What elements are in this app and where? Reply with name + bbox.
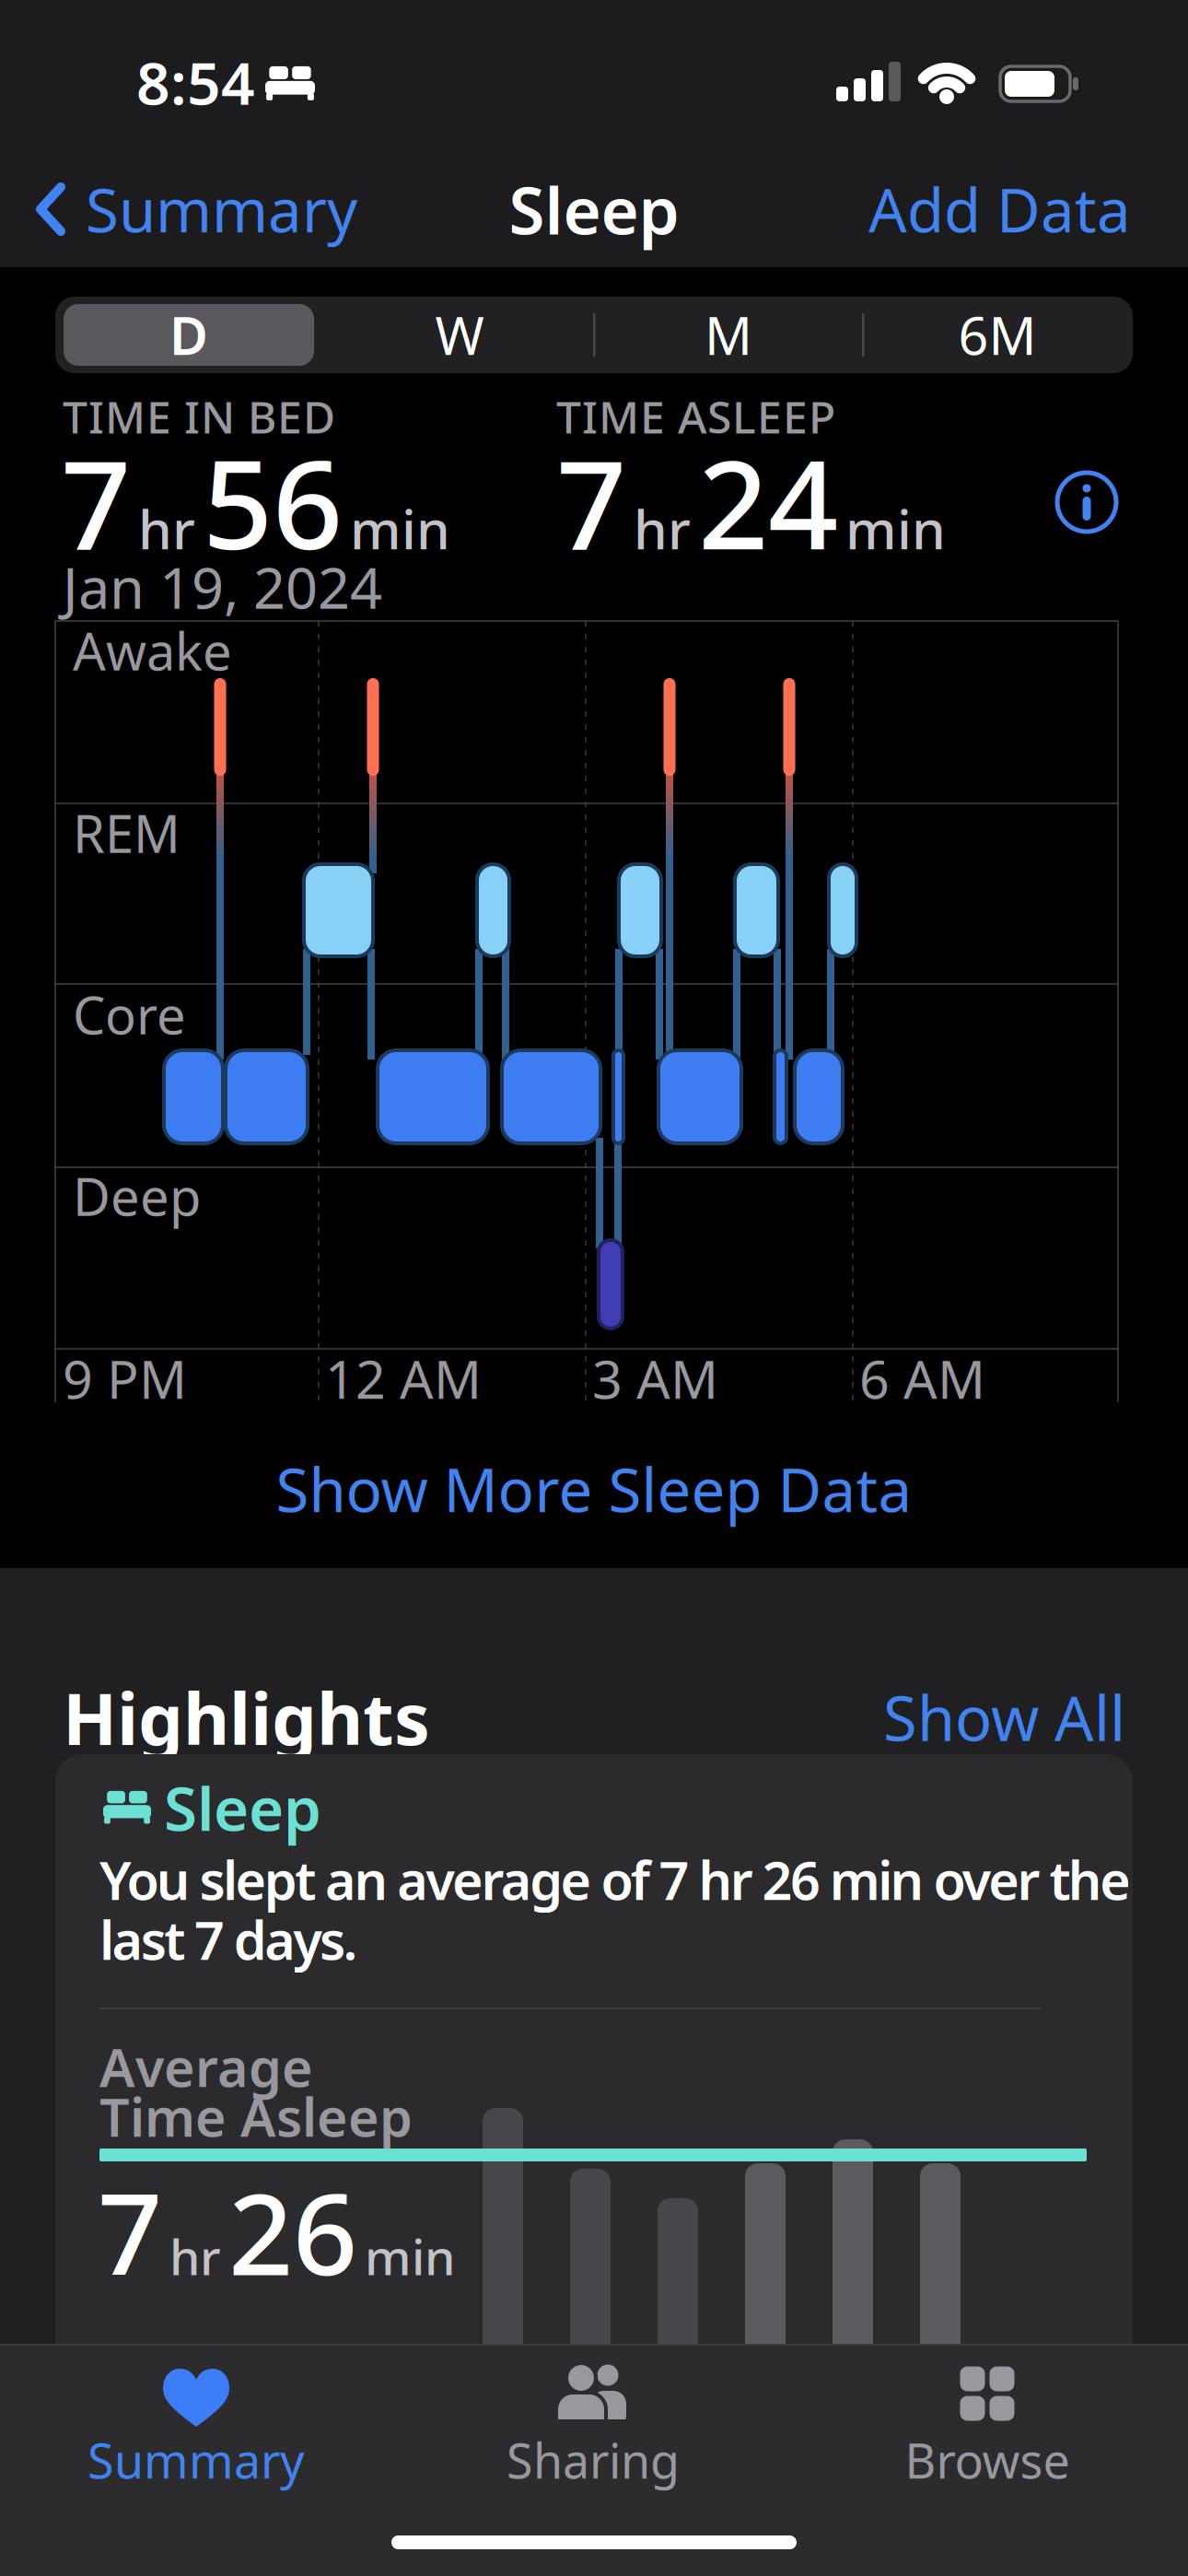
button[interactable]: More info	[1057, 473, 1116, 532]
staticText: D	[169, 299, 208, 369]
staticText: TIME ASLEEP	[556, 387, 835, 446]
staticText: 6M	[958, 299, 1037, 369]
staticText: 8:54	[136, 43, 255, 121]
staticText: Jan 19, 2024	[63, 549, 382, 624]
button[interactable]: Sharing	[492, 2344, 694, 2491]
staticText: TIME IN BED	[63, 387, 335, 446]
staticText: Awake	[73, 616, 232, 685]
staticText: Show More Sleep Data	[276, 1449, 912, 1529]
button[interactable]: Sleep	[55, 1754, 1133, 2368]
staticText: 7	[61, 420, 131, 583]
staticText: 7	[98, 2156, 162, 2306]
staticText: Show All	[883, 1677, 1125, 1758]
staticText: 3 AM	[592, 1343, 718, 1413]
staticText: Browse	[905, 2428, 1070, 2492]
staticText: You slept an average of 7 hr 26 min over…	[99, 1844, 1131, 1914]
staticText: W	[435, 299, 484, 369]
button[interactable]: W	[325, 304, 594, 366]
staticText: M	[705, 299, 752, 369]
staticText: min	[365, 2223, 455, 2289]
button[interactable]: Show All	[849, 1689, 1125, 1746]
staticText: Deep	[73, 1162, 201, 1230]
staticText: 24	[698, 420, 838, 583]
staticText: 6 AM	[859, 1343, 985, 1413]
staticText: Summary	[86, 169, 357, 249]
staticText: Add Data	[868, 169, 1131, 249]
button[interactable]: Browse	[886, 2344, 1089, 2491]
staticText: Sleep	[164, 1768, 321, 1848]
staticText: 56	[203, 420, 343, 583]
staticText: 26	[228, 2156, 357, 2306]
staticText: min	[350, 492, 450, 564]
button[interactable]: Summary	[37, 181, 382, 238]
staticText: Average	[99, 2031, 313, 2102]
staticText: Highlights	[63, 1670, 430, 1765]
button[interactable]: Summary	[95, 2344, 297, 2491]
staticText: last 7 days.	[99, 1904, 358, 1974]
staticText: hr	[169, 2223, 221, 2289]
staticText: Core	[73, 980, 186, 1049]
staticText: REM	[73, 799, 181, 867]
staticText: 9 PM	[63, 1343, 187, 1413]
staticText: Summary	[87, 2428, 305, 2492]
staticText: min	[845, 492, 946, 564]
button[interactable]: M	[594, 304, 863, 366]
staticText: 7	[556, 420, 626, 583]
staticText: Sharing	[507, 2428, 680, 2492]
button[interactable]: D	[64, 304, 314, 366]
button[interactable]: Show More Sleep Data	[244, 1459, 944, 1518]
staticText: hr	[634, 492, 691, 564]
staticText: Time Asleep	[99, 2081, 413, 2151]
staticText: 12 AM	[325, 1343, 482, 1413]
button[interactable]: 6M	[863, 304, 1132, 366]
staticText: Sleep	[509, 166, 679, 252]
staticText: hr	[138, 492, 195, 564]
button[interactable]: Add Data	[855, 181, 1131, 238]
